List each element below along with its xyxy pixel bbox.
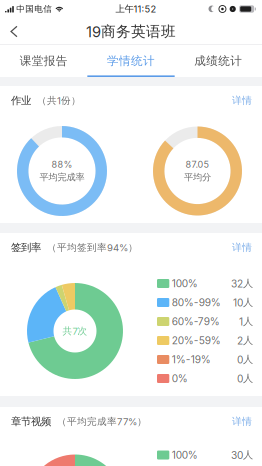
button[interactable]: 学情统计 bbox=[87, 45, 175, 77]
staticText: 学情统计 bbox=[107, 54, 155, 68]
staticText: 平均分 bbox=[184, 171, 211, 183]
staticText: 20%-59% bbox=[172, 334, 221, 347]
staticText: 88% bbox=[51, 159, 72, 170]
staticText: 上午11:52 bbox=[115, 3, 156, 15]
button[interactable]: 成绩统计 bbox=[175, 45, 262, 77]
staticText: （平均完成率77%） bbox=[51, 415, 147, 428]
staticText: 19商务英语班 bbox=[86, 22, 176, 41]
staticText: 签到率 bbox=[11, 241, 41, 254]
staticText: 32人 bbox=[231, 277, 253, 290]
staticText: 课堂报告 bbox=[20, 54, 68, 68]
staticText: 详情 bbox=[232, 415, 252, 428]
staticText: 87.05 bbox=[185, 159, 209, 170]
staticText: 10人 bbox=[233, 296, 253, 309]
staticText: （共1份） bbox=[31, 94, 81, 107]
button[interactable]: 课堂报告 bbox=[0, 45, 87, 77]
staticText: 80%-99% bbox=[172, 296, 221, 309]
staticText: 30人 bbox=[231, 449, 253, 461]
staticText: 100% bbox=[172, 449, 198, 461]
staticText: 1%-19% bbox=[172, 353, 211, 366]
button[interactable]: 详情 bbox=[232, 94, 252, 107]
staticText: 章节视频 bbox=[11, 415, 51, 428]
staticText: 中国电信 bbox=[16, 4, 52, 14]
staticText: 0人 bbox=[237, 372, 253, 385]
staticText: 60%-79% bbox=[172, 315, 220, 328]
button[interactable]: Back bbox=[0, 18, 28, 45]
staticText: 0人 bbox=[237, 353, 253, 366]
staticText: 共7次 bbox=[62, 325, 87, 337]
staticText: 1人 bbox=[239, 315, 253, 328]
staticText: 2人 bbox=[237, 334, 253, 347]
staticText: 0% bbox=[172, 372, 188, 385]
staticText: 100% bbox=[172, 277, 198, 290]
staticText: 成绩统计 bbox=[194, 54, 242, 68]
staticText: 平均完成率 bbox=[39, 171, 84, 183]
staticText: 作业 bbox=[11, 94, 31, 107]
staticText: （平均签到率94%） bbox=[41, 241, 138, 254]
button[interactable]: 详情 bbox=[232, 415, 252, 428]
staticText: 详情 bbox=[232, 241, 252, 254]
button[interactable]: 详情 bbox=[232, 241, 252, 254]
staticText: 详情 bbox=[232, 94, 252, 107]
